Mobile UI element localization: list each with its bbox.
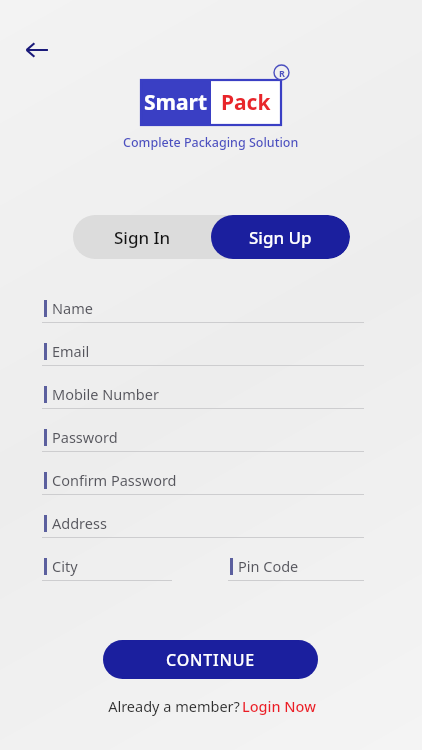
staticText: Already a member? — [106, 696, 242, 716]
staticText: City — [52, 556, 78, 576]
button[interactable]: Sign In — [73, 215, 211, 259]
staticText: Mobile Number — [52, 384, 159, 404]
staticText: Name — [52, 298, 93, 318]
staticText: Password — [52, 427, 118, 447]
button[interactable]: Pin Code — [228, 556, 364, 581]
button[interactable]: Password — [42, 427, 364, 452]
staticText: Confirm Password — [52, 470, 177, 490]
staticText: Smart — [144, 88, 208, 117]
staticText: Pin Code — [238, 556, 299, 576]
staticText: Pack — [221, 88, 271, 117]
button[interactable]: Login Now — [242, 696, 316, 716]
staticText: Complete Packaging Solution — [123, 134, 299, 151]
button[interactable]: Address — [42, 513, 364, 538]
staticText: Login Now — [242, 696, 316, 716]
staticText: Sign Up — [249, 226, 312, 249]
staticText: Email — [52, 341, 90, 361]
button[interactable]: Email — [42, 341, 364, 366]
button[interactable]: Name — [42, 298, 364, 323]
staticText: R — [279, 67, 285, 79]
staticText: Sign In — [114, 226, 171, 249]
staticText: CONTINUE — [166, 649, 255, 671]
button[interactable]: Confirm Password — [42, 470, 364, 495]
button[interactable]: Back — [15, 28, 59, 72]
staticText: Address — [52, 513, 107, 533]
button[interactable]: CONTINUE — [103, 640, 318, 679]
button[interactable]: Sign Up — [211, 215, 350, 259]
button[interactable]: Mobile Number — [42, 384, 364, 409]
button[interactable]: City — [42, 556, 172, 581]
